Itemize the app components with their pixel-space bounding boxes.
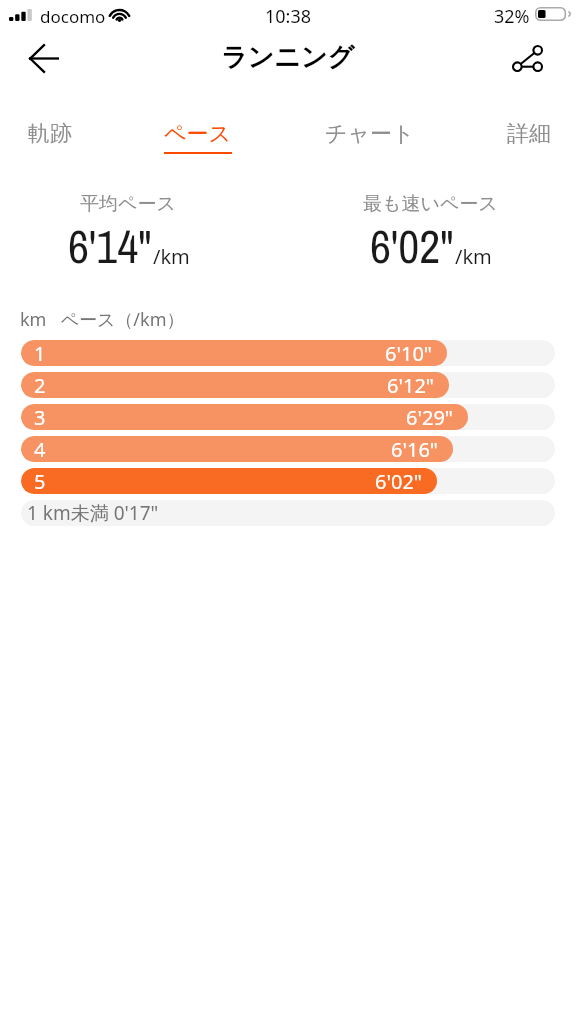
staticText: 6'29" [406,404,453,430]
staticText: 5 [34,468,46,494]
staticText: 2 [34,372,46,398]
staticText: /km [153,243,190,270]
button[interactable]: 詳細 [507,120,551,154]
staticText: 6'02" [375,468,422,494]
staticText: km ペース（/km） [20,307,185,332]
button[interactable]: 1 [21,340,555,366]
staticText: ランニング [221,41,355,74]
button[interactable]: 3 [21,404,555,430]
button[interactable]: 2 [21,372,555,398]
staticText: 6'02" [370,215,454,277]
staticText: ペース [164,120,232,148]
staticText: 32% [494,4,530,29]
staticText: 最も速いペース [363,192,498,216]
button[interactable]: 1 km未満 0'17" [21,500,555,526]
staticText: 4 [34,436,46,462]
button[interactable]: Back [8,32,60,84]
button[interactable]: 軌跡 [28,120,72,154]
staticText: 詳細 [507,120,551,148]
staticText: 6'10" [385,340,432,366]
staticText: 10:38 [265,4,312,29]
staticText: 3 [34,404,46,430]
button[interactable]: 5 [21,468,555,494]
button[interactable]: チャート [325,120,415,154]
staticText: 1 km未満 0'17" [27,500,159,526]
button[interactable]: Share [503,34,551,82]
staticText: 6'14" [68,215,152,277]
staticText: 6'12" [387,372,434,398]
staticText: docomo [40,5,106,28]
staticText: /km [455,243,492,270]
button[interactable]: ペース [164,120,232,154]
staticText: 平均ペース [80,192,176,216]
staticText: チャート [325,120,415,148]
staticText: 軌跡 [28,120,72,148]
staticText: 6'16" [391,436,438,462]
button[interactable]: 4 [21,436,555,462]
staticText: 1 [34,340,46,366]
